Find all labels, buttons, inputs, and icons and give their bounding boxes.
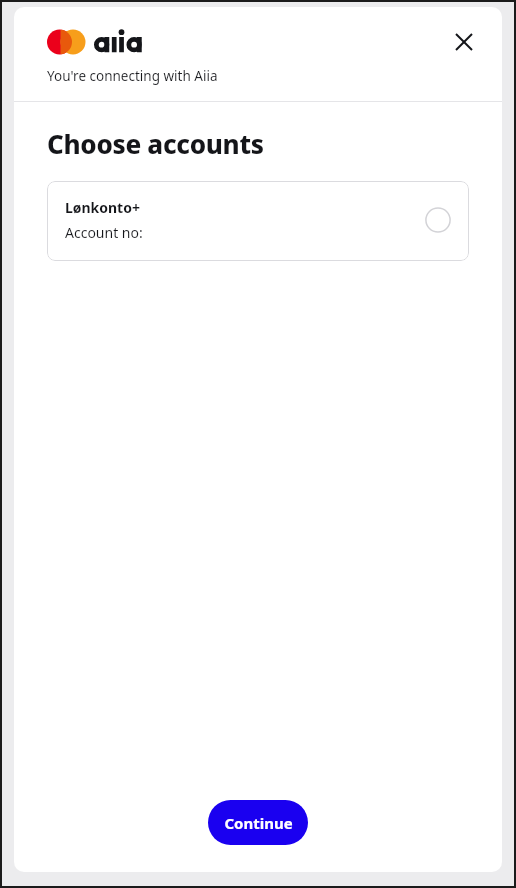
staticText: Choose accounts [47, 126, 264, 161]
staticText: Continue [224, 813, 293, 833]
staticText: You're connecting with Aiia [47, 67, 218, 85]
button[interactable]: Lønkonto+ [47, 181, 469, 261]
staticText: Account no: [65, 223, 143, 242]
button[interactable]: Close [446, 24, 482, 60]
button[interactable]: Continue [208, 800, 308, 845]
other: Aiia [47, 29, 137, 54]
staticText: Lønkonto+ [65, 198, 140, 217]
